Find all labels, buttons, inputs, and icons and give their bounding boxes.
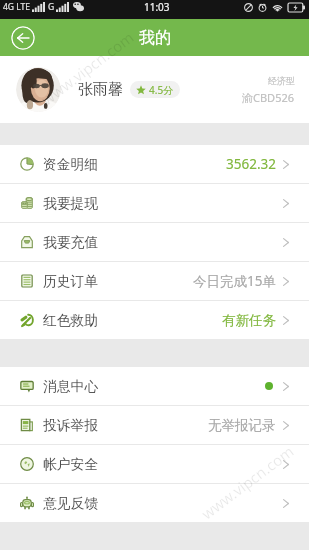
- staticText: 投诉举报: [43, 417, 99, 434]
- staticText: 4.5分: [149, 83, 174, 97]
- staticText: 无举报记录: [208, 417, 276, 434]
- staticText: 4G LTE: [3, 1, 30, 13]
- button[interactable]: Back: [11, 26, 35, 50]
- button[interactable]: 意见反馈: [0, 484, 309, 522]
- button[interactable]: 我要充值: [0, 223, 309, 261]
- button[interactable]: 资金明细: [0, 145, 309, 183]
- button[interactable]: 我要提现: [0, 184, 309, 222]
- staticText: 经济型: [268, 75, 295, 86]
- staticText: www.vipcn.com: [37, 27, 138, 109]
- button[interactable]: 红色救助: [0, 301, 309, 339]
- staticText: 我要提现: [43, 195, 99, 212]
- staticText: 3562.32: [226, 155, 276, 173]
- button[interactable]: 投诉举报: [0, 406, 309, 444]
- staticText: 张雨馨: [78, 80, 123, 99]
- button[interactable]: 张雨馨: [0, 56, 309, 123]
- button[interactable]: 消息中心: [0, 367, 309, 405]
- staticText: 消息中心: [43, 378, 99, 395]
- staticText: www.vipcn.com: [197, 441, 298, 523]
- staticText: 历史订单: [43, 273, 99, 290]
- staticText: 有新任务: [222, 312, 276, 329]
- staticText: 11:03: [144, 0, 170, 14]
- button[interactable]: 帐户安全: [0, 445, 309, 483]
- staticText: G: [48, 1, 55, 13]
- staticText: 今日完成15单: [193, 272, 276, 290]
- staticText: 我的: [139, 28, 171, 48]
- staticText: 我要充值: [43, 234, 99, 251]
- staticText: 意见反馈: [43, 495, 99, 512]
- staticText: 红色救助: [43, 312, 99, 329]
- staticText: 渝CBD526: [242, 90, 295, 105]
- staticText: 资金明细: [43, 156, 99, 173]
- button[interactable]: 历史订单: [0, 262, 309, 300]
- staticText: 帐户安全: [43, 456, 99, 473]
